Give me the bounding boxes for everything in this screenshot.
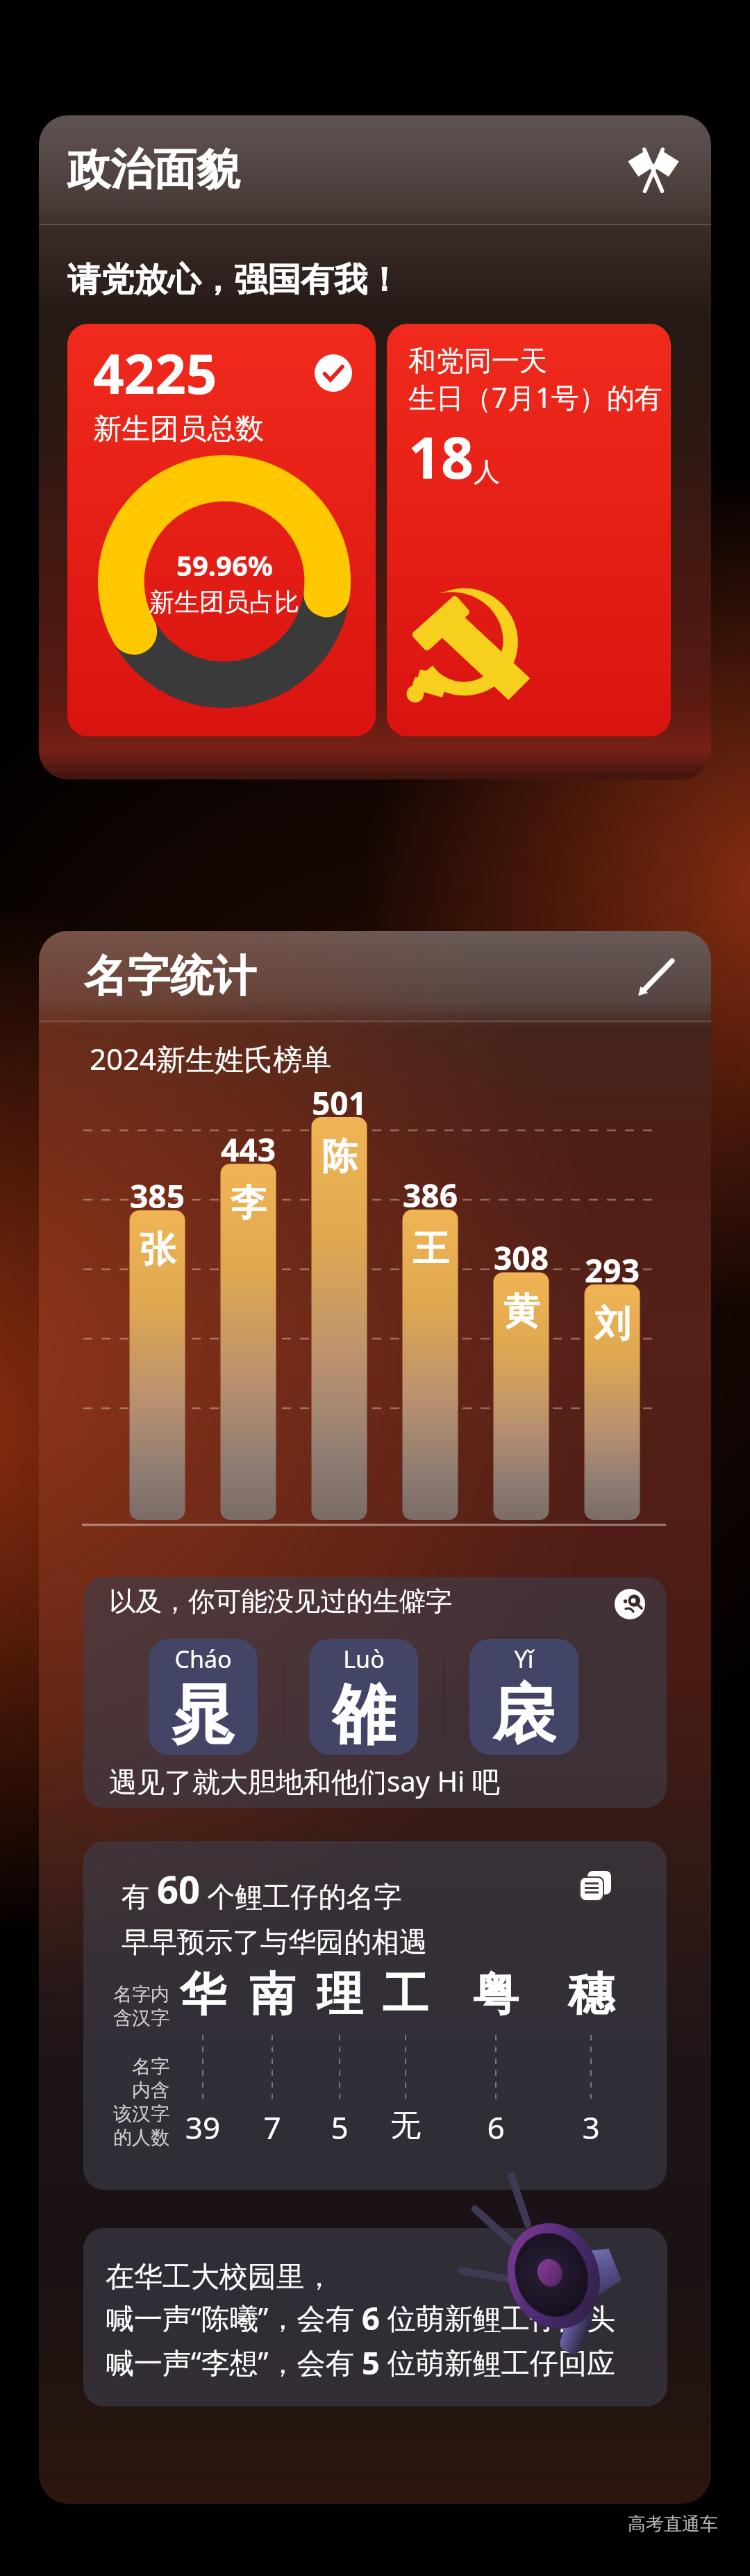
button[interactable]: 有 — [83, 1841, 667, 2190]
staticText: 请党放心，强国有我！ — [67, 259, 401, 301]
staticText: 位萌新鲤工仔回头 — [380, 2298, 615, 2337]
staticText: 喊一声“陈曦”，会有 — [106, 2298, 362, 2337]
staticText: 张 — [140, 1227, 176, 1273]
staticText: 4225 — [93, 336, 217, 410]
staticText: 扆 — [492, 1675, 556, 1755]
staticText: 6 — [454, 2106, 537, 2148]
staticText: 386 — [403, 1173, 458, 1217]
button[interactable]: Luò — [309, 1639, 418, 1755]
staticText: 2024新生姓氏榜单 — [90, 1039, 332, 1078]
staticText: 443 — [221, 1128, 276, 1171]
staticText: 59.96% — [176, 546, 273, 584]
staticText: 385 — [130, 1174, 185, 1218]
staticText: 的人数 — [96, 2126, 169, 2149]
staticText: 位萌新鲤工仔回应 — [380, 2343, 615, 2381]
staticText: 501 — [312, 1081, 367, 1125]
staticText: 黄 — [503, 1289, 540, 1335]
staticText: 在华工大校园里， — [106, 2259, 333, 2295]
staticText: 和党同一天 — [408, 343, 547, 378]
button[interactable]: 在华工大校园里， — [83, 2228, 667, 2406]
staticText: 工 — [364, 1965, 447, 2023]
staticText: 雒 — [332, 1675, 396, 1755]
staticText: 名字统计 — [84, 949, 256, 1003]
button[interactable]: Yǐ — [469, 1639, 578, 1755]
staticText: 早早预示了与华园的相遇 — [122, 1924, 427, 1959]
staticText: 人 — [474, 455, 500, 488]
button[interactable]: 编辑 — [635, 954, 679, 998]
staticText: 308 — [494, 1236, 549, 1280]
button[interactable]: 生僻字 — [614, 1586, 649, 1621]
staticText: 陈 — [322, 1134, 358, 1180]
staticText: 个鲤工仔的名字 — [200, 1876, 402, 1915]
staticText: 无 — [364, 2106, 447, 2145]
staticText: 名字 — [96, 2055, 169, 2079]
button[interactable]: 名字 — [578, 1869, 613, 1904]
staticText: 7 — [231, 2106, 314, 2148]
staticText: 华 — [161, 1965, 244, 2023]
staticText: 5 — [362, 2341, 380, 2384]
staticText: 新生团员占比 — [149, 586, 299, 618]
staticText: 60 — [157, 1863, 200, 1915]
button[interactable]: 以及，你可能没见过的生僻字 — [83, 1577, 667, 1808]
staticText: 293 — [585, 1248, 640, 1292]
staticText: 含汉字 — [96, 2006, 169, 2030]
staticText: 粤 — [454, 1965, 537, 2023]
staticText: 王 — [412, 1226, 449, 1272]
staticText: 39 — [161, 2106, 244, 2148]
button[interactable]: 政治面貌 — [626, 142, 681, 197]
staticText: 以及，你可能没见过的生僻字 — [109, 1585, 452, 1618]
staticText: 遇见了就大胆地和他们say Hi 吧 — [109, 1762, 500, 1800]
staticText: 理 — [298, 1965, 381, 2023]
staticText: 5 — [298, 2106, 381, 2148]
staticText: 晁 — [172, 1675, 235, 1755]
button[interactable]: Cháo — [149, 1639, 258, 1755]
button[interactable]: 和党同一天 — [387, 324, 671, 736]
staticText: 18 — [408, 418, 474, 495]
staticText: Luò — [343, 1643, 385, 1675]
staticText: 该汉字 — [96, 2102, 169, 2126]
staticText: 3 — [549, 2106, 633, 2148]
staticText: 政治面貌 — [67, 142, 240, 197]
staticText: 有 — [122, 1876, 157, 1915]
staticText: 李 — [231, 1180, 267, 1226]
staticText: 喊一声“李想”，会有 — [106, 2343, 362, 2381]
staticText: 南 — [231, 1965, 314, 2023]
staticText: Cháo — [174, 1643, 232, 1675]
staticText: 生日（7月1号）的有 — [408, 378, 662, 416]
staticText: Yǐ — [514, 1643, 534, 1675]
staticText: 6 — [362, 2297, 380, 2339]
staticText: 内含 — [96, 2079, 169, 2102]
staticText: 高考直通车 — [628, 2513, 718, 2536]
staticText: 穗 — [549, 1965, 633, 2023]
button[interactable]: 4225 — [67, 324, 376, 736]
staticText: 刘 — [594, 1301, 631, 1347]
staticText: 名字内 — [96, 1983, 169, 2006]
staticText: 新生团员总数 — [93, 411, 264, 447]
